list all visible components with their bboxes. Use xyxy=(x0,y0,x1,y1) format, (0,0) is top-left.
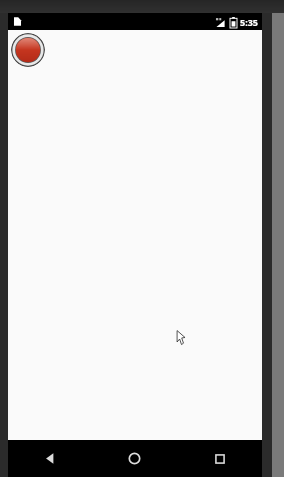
staticText: 5:35 xyxy=(240,16,258,28)
button[interactable]: Record xyxy=(11,33,45,67)
button[interactable]: Back xyxy=(8,440,92,477)
button[interactable]: Recent apps xyxy=(177,440,262,477)
button[interactable]: Home xyxy=(92,440,177,477)
